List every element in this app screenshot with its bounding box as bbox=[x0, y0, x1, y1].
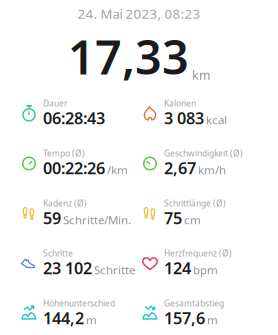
button[interactable]: Schrittlänge (Ø) bbox=[141, 188, 262, 238]
button[interactable]: Geschwindigkeit (Ø) bbox=[141, 138, 262, 188]
staticText: Schritte bbox=[94, 262, 135, 278]
button[interactable]: Dauer bbox=[20, 88, 141, 138]
button[interactable]: Höhenunterschied bbox=[20, 288, 141, 335]
staticText: cm bbox=[184, 212, 201, 228]
staticText: Schritte/Min. bbox=[63, 212, 131, 228]
button[interactable]: Herzfrequenz (Ø) bbox=[141, 238, 262, 288]
staticText: m bbox=[86, 312, 97, 328]
staticText: 23 102 bbox=[43, 257, 92, 279]
staticText: 124 bbox=[164, 257, 191, 279]
staticText: Gesamtabstieg bbox=[164, 297, 224, 309]
button[interactable]: Gesamtabstieg bbox=[141, 288, 262, 335]
staticText: Dauer bbox=[43, 97, 67, 109]
button[interactable]: Kadenz (Ø) bbox=[20, 188, 141, 238]
staticText: 24. Mai 2023, 08:23 bbox=[77, 5, 200, 23]
button[interactable]: Schritte bbox=[20, 238, 141, 288]
staticText: 59 bbox=[43, 207, 61, 229]
staticText: 2,67 bbox=[164, 157, 196, 179]
button[interactable]: Kalorien bbox=[141, 88, 262, 138]
staticText: 3 083 bbox=[164, 107, 204, 129]
staticText: km/h bbox=[198, 162, 226, 178]
staticText: Kalorien bbox=[164, 97, 196, 109]
staticText: 17,33 bbox=[68, 25, 189, 88]
staticText: m bbox=[207, 312, 218, 328]
staticText: 06:28:43 bbox=[43, 107, 105, 129]
staticText: Schritte bbox=[43, 247, 73, 259]
staticText: Tempo (Ø) bbox=[43, 147, 85, 159]
staticText: 157,6 bbox=[164, 307, 205, 329]
staticText: 144,2 bbox=[43, 307, 84, 329]
staticText: Höhenunterschied bbox=[43, 297, 115, 309]
button[interactable]: Tempo (Ø) bbox=[20, 138, 141, 188]
staticText: 00:22:26 bbox=[43, 157, 105, 179]
staticText: Geschwindigkeit (Ø) bbox=[164, 147, 243, 159]
staticText: kcal bbox=[206, 112, 227, 128]
staticText: /km bbox=[107, 162, 128, 178]
staticText: km bbox=[192, 67, 210, 83]
staticText: Schrittlänge (Ø) bbox=[164, 197, 226, 209]
staticText: Kadenz (Ø) bbox=[43, 197, 87, 209]
staticText: 75 bbox=[164, 207, 182, 229]
staticText: bpm bbox=[193, 262, 218, 278]
staticText: Herzfrequenz (Ø) bbox=[164, 247, 232, 259]
